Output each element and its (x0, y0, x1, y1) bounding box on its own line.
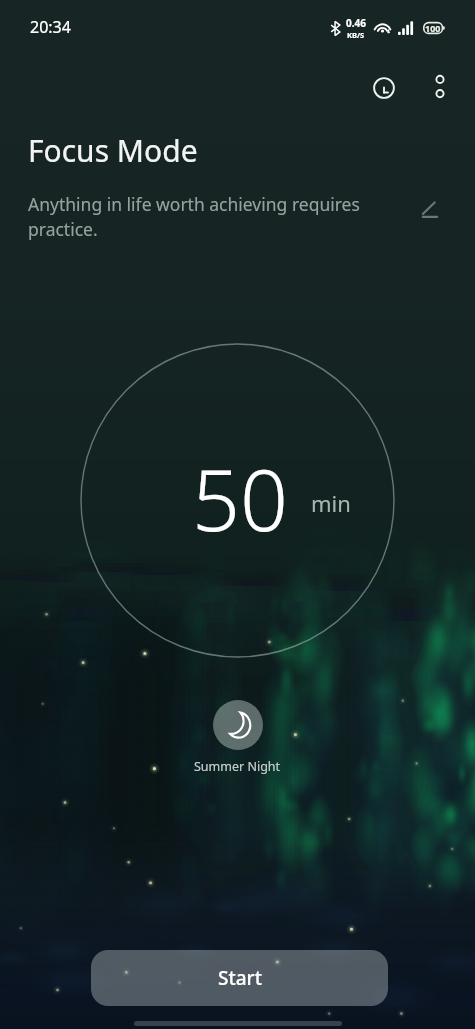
staticText: Start (218, 965, 262, 991)
button[interactable]: More options (420, 66, 460, 106)
staticText: 100 (425, 22, 441, 34)
button[interactable]: Start (91, 950, 388, 1006)
staticText: 20:34 (30, 16, 71, 38)
button[interactable]: Summer Night sound (213, 700, 263, 750)
staticText: 50 (192, 441, 288, 555)
staticText: KB/S (347, 30, 365, 40)
staticText: min (311, 488, 351, 518)
staticText: Summer Night (194, 758, 281, 775)
button[interactable]: Edit quote (409, 188, 451, 230)
staticText: Focus Mode (28, 130, 198, 171)
staticText: 0.46 (346, 16, 366, 30)
button[interactable]: History (362, 66, 406, 110)
staticText: Anything in life worth achieving require… (28, 192, 380, 242)
